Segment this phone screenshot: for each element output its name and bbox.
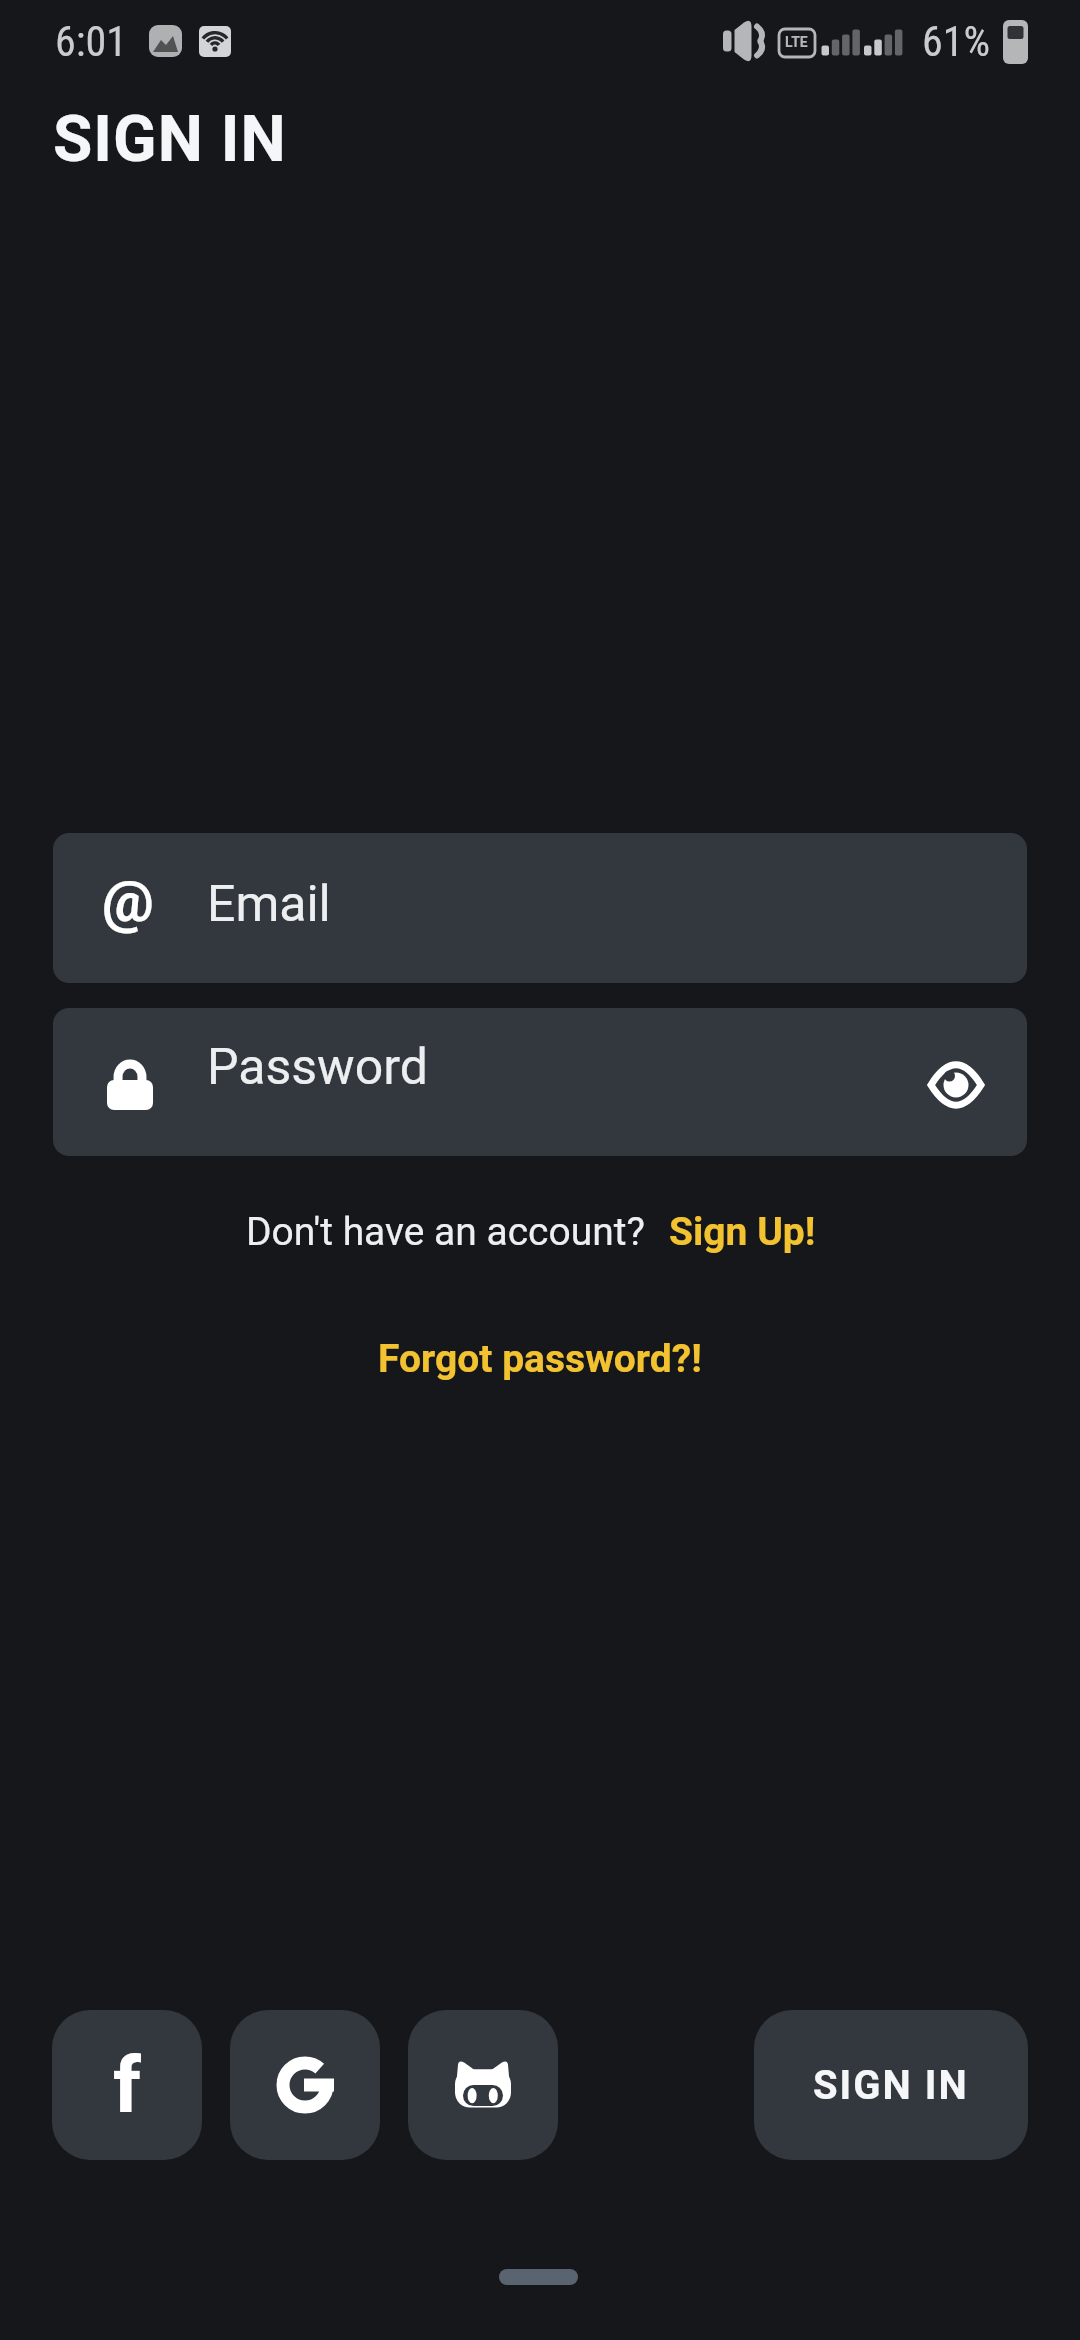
staticText: 61% <box>922 17 991 66</box>
button[interactable]: Password <box>53 1008 1027 1156</box>
staticText: SIGN IN <box>53 102 287 177</box>
staticText: SIGN IN <box>813 2062 969 2109</box>
button[interactable]: SIGN IN <box>754 2010 1028 2160</box>
staticText: @ <box>102 867 154 935</box>
staticText: LTE <box>785 34 808 50</box>
button[interactable]: Forgot password?! <box>378 1336 702 1382</box>
button[interactable]: f <box>52 2010 202 2160</box>
staticText: 6:01 <box>55 17 128 66</box>
button[interactable]: @ <box>53 833 1027 983</box>
staticText: Don't have an account? <box>246 1209 645 1255</box>
staticText: f <box>113 2040 141 2131</box>
staticText: Email <box>207 875 331 934</box>
staticText: Password <box>207 1038 428 1097</box>
button[interactable] <box>230 2010 380 2160</box>
button[interactable] <box>408 2010 558 2160</box>
button[interactable]: Sign Up! <box>669 1209 816 1255</box>
